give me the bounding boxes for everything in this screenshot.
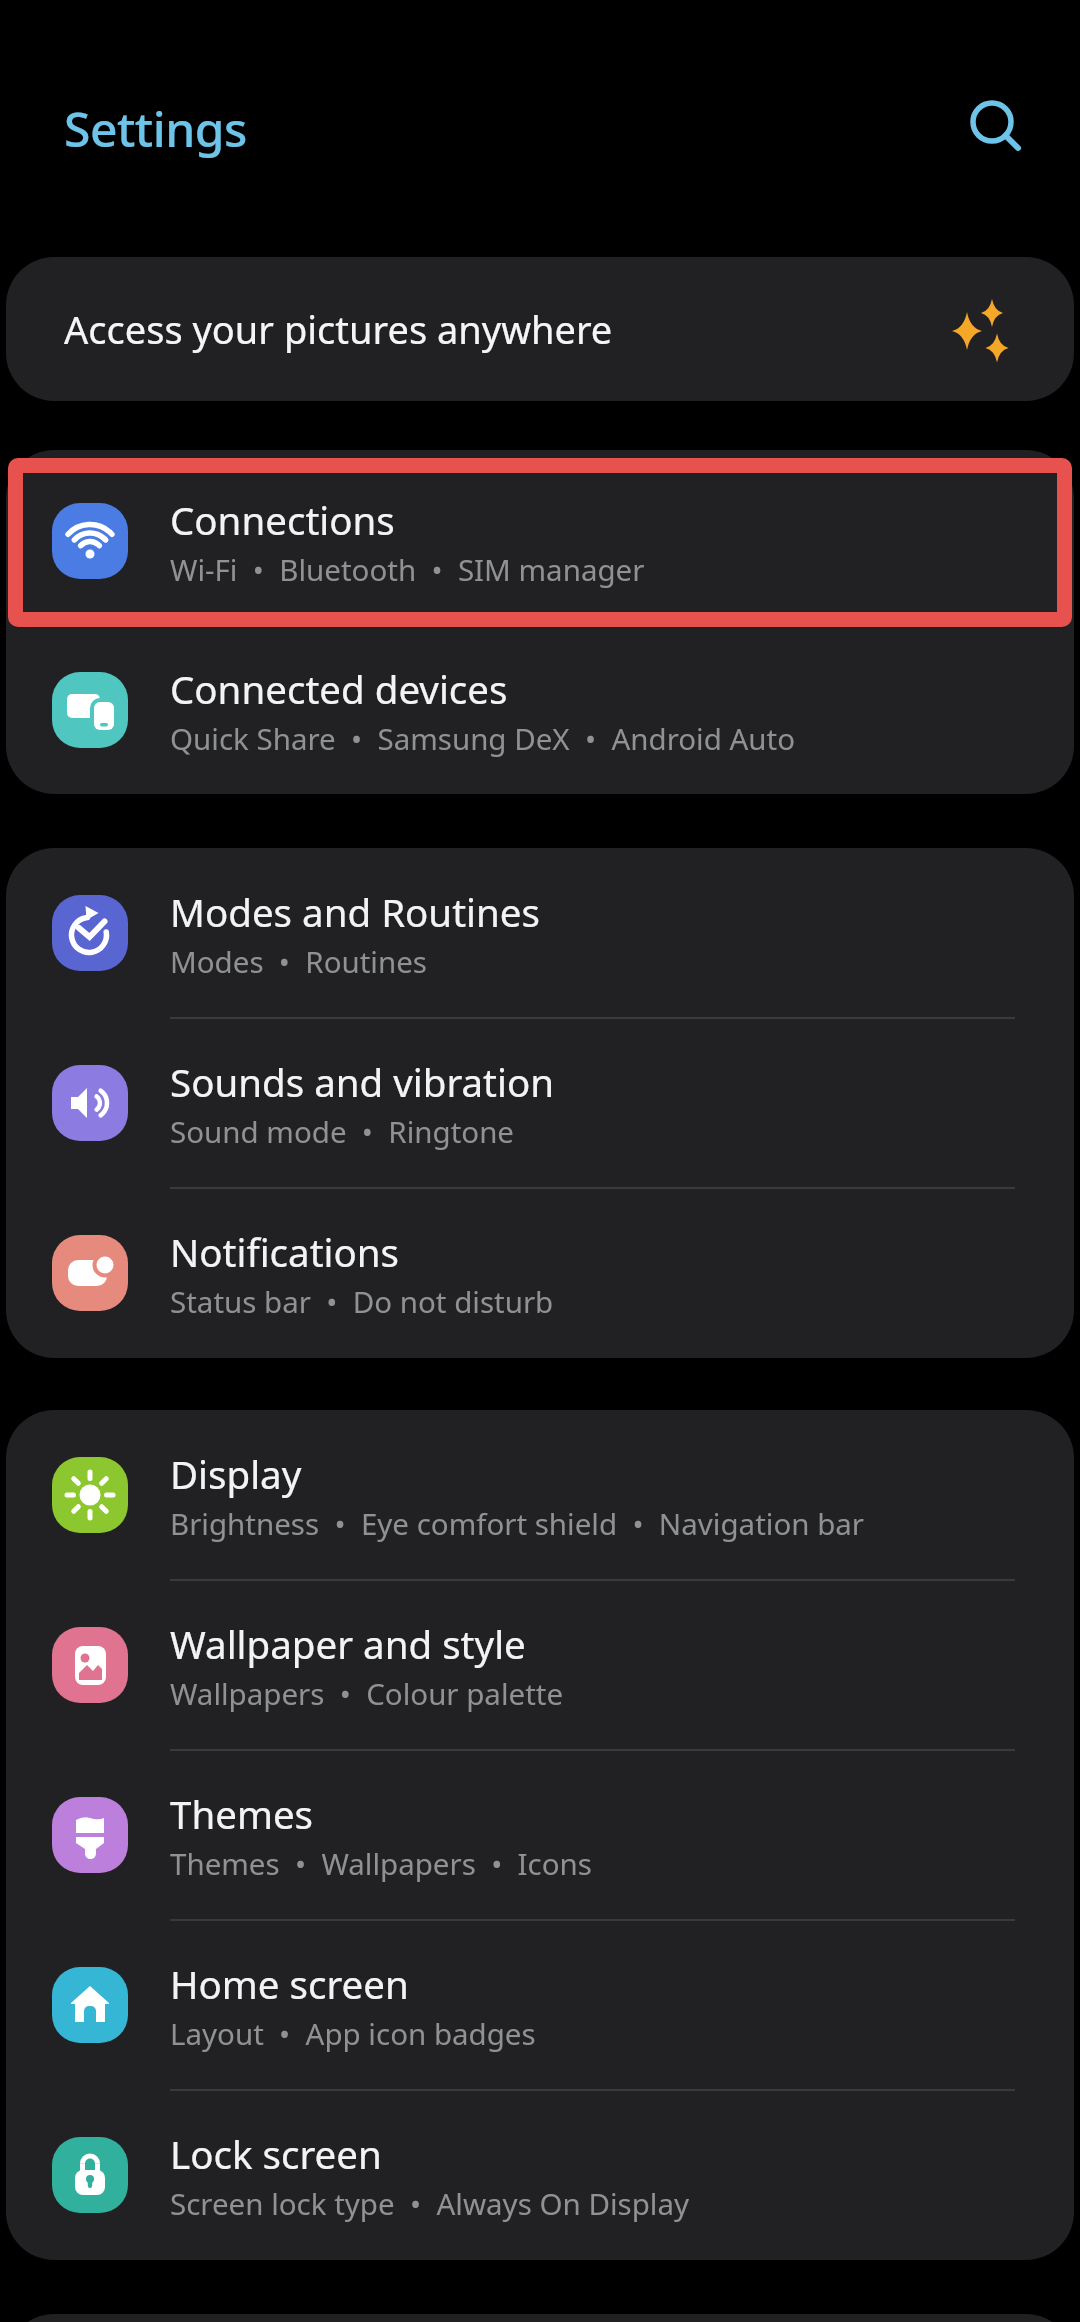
button[interactable]: Connections: [6, 456, 1074, 626]
button[interactable]: Connected devices: [6, 626, 1074, 794]
staticText: Quick Share • Samsung DeX • Android Auto: [170, 718, 796, 758]
staticText: Wallpaper and style: [170, 1618, 526, 1670]
staticText: Home screen: [170, 1958, 409, 2010]
staticText: Wallpapers • Colour palette: [170, 1673, 564, 1713]
staticText: Settings: [64, 96, 247, 161]
button[interactable]: Sounds and vibration: [6, 1018, 1074, 1188]
staticText: Layout • App icon badges: [170, 2013, 536, 2053]
button[interactable]: Wallpaper and style: [6, 1580, 1074, 1750]
staticText: Access your pictures anywhere: [64, 303, 613, 355]
staticText: Notifications: [170, 1226, 399, 1278]
staticText: Display: [170, 1448, 302, 1500]
button[interactable]: Display: [6, 1410, 1074, 1580]
staticText: Sound mode • Ringtone: [170, 1111, 514, 1151]
staticText: Screen lock type • Always On Display: [170, 2183, 690, 2223]
staticText: Connections: [170, 494, 395, 546]
staticText: Status bar • Do not disturb: [170, 1281, 554, 1321]
staticText: Connected devices: [170, 663, 508, 715]
staticText: Themes • Wallpapers • Icons: [170, 1843, 592, 1883]
button[interactable]: [962, 92, 1022, 152]
staticText: Brightness • Eye comfort shield • Naviga…: [170, 1503, 865, 1543]
staticText: Themes: [170, 1788, 314, 1840]
staticText: Sounds and vibration: [170, 1056, 555, 1108]
button[interactable]: Lock screen: [6, 2090, 1074, 2260]
button[interactable]: Modes and Routines: [6, 848, 1074, 1018]
staticText: Lock screen: [170, 2128, 382, 2180]
button[interactable]: Access your pictures anywhere: [6, 257, 1074, 401]
staticText: Modes • Routines: [170, 941, 427, 981]
staticText: Modes and Routines: [170, 886, 540, 938]
button[interactable]: Home screen: [6, 1920, 1074, 2090]
staticText: Wi-Fi • Bluetooth • SIM manager: [170, 549, 645, 589]
button[interactable]: Notifications: [6, 1188, 1074, 1358]
button[interactable]: Themes: [6, 1750, 1074, 1920]
